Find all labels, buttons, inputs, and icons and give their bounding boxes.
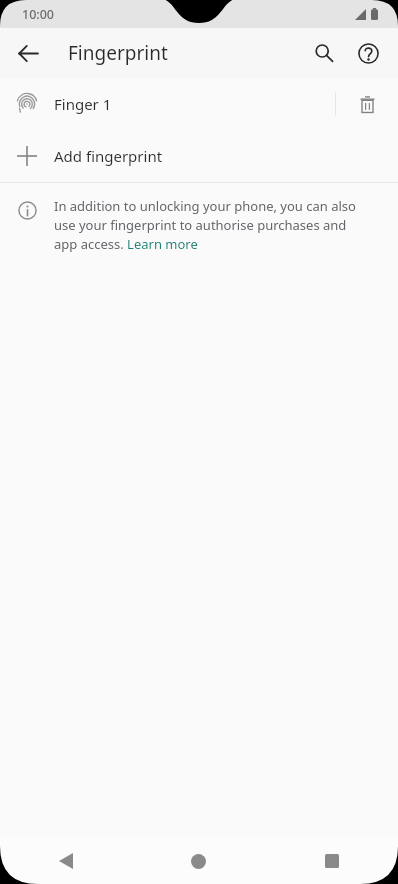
staticText: Add fingerprint (54, 146, 163, 166)
button[interactable]: Help (346, 31, 390, 75)
button[interactable]: Finger 1 (0, 78, 398, 130)
staticText: In addition to unlocking your phone, you… (54, 197, 370, 253)
button[interactable]: Add fingerprint (0, 130, 398, 182)
staticText: Finger 1 (54, 94, 335, 114)
button[interactable]: Search (302, 31, 346, 75)
button[interactable]: Recent apps (265, 838, 398, 884)
staticText: Fingerprint (68, 40, 168, 66)
button[interactable]: Home (132, 838, 265, 884)
button[interactable]: Back (0, 838, 132, 884)
button[interactable]: Back (6, 31, 50, 75)
staticText: 10:00 (22, 6, 55, 23)
button[interactable]: Delete fingerprint (336, 78, 398, 130)
